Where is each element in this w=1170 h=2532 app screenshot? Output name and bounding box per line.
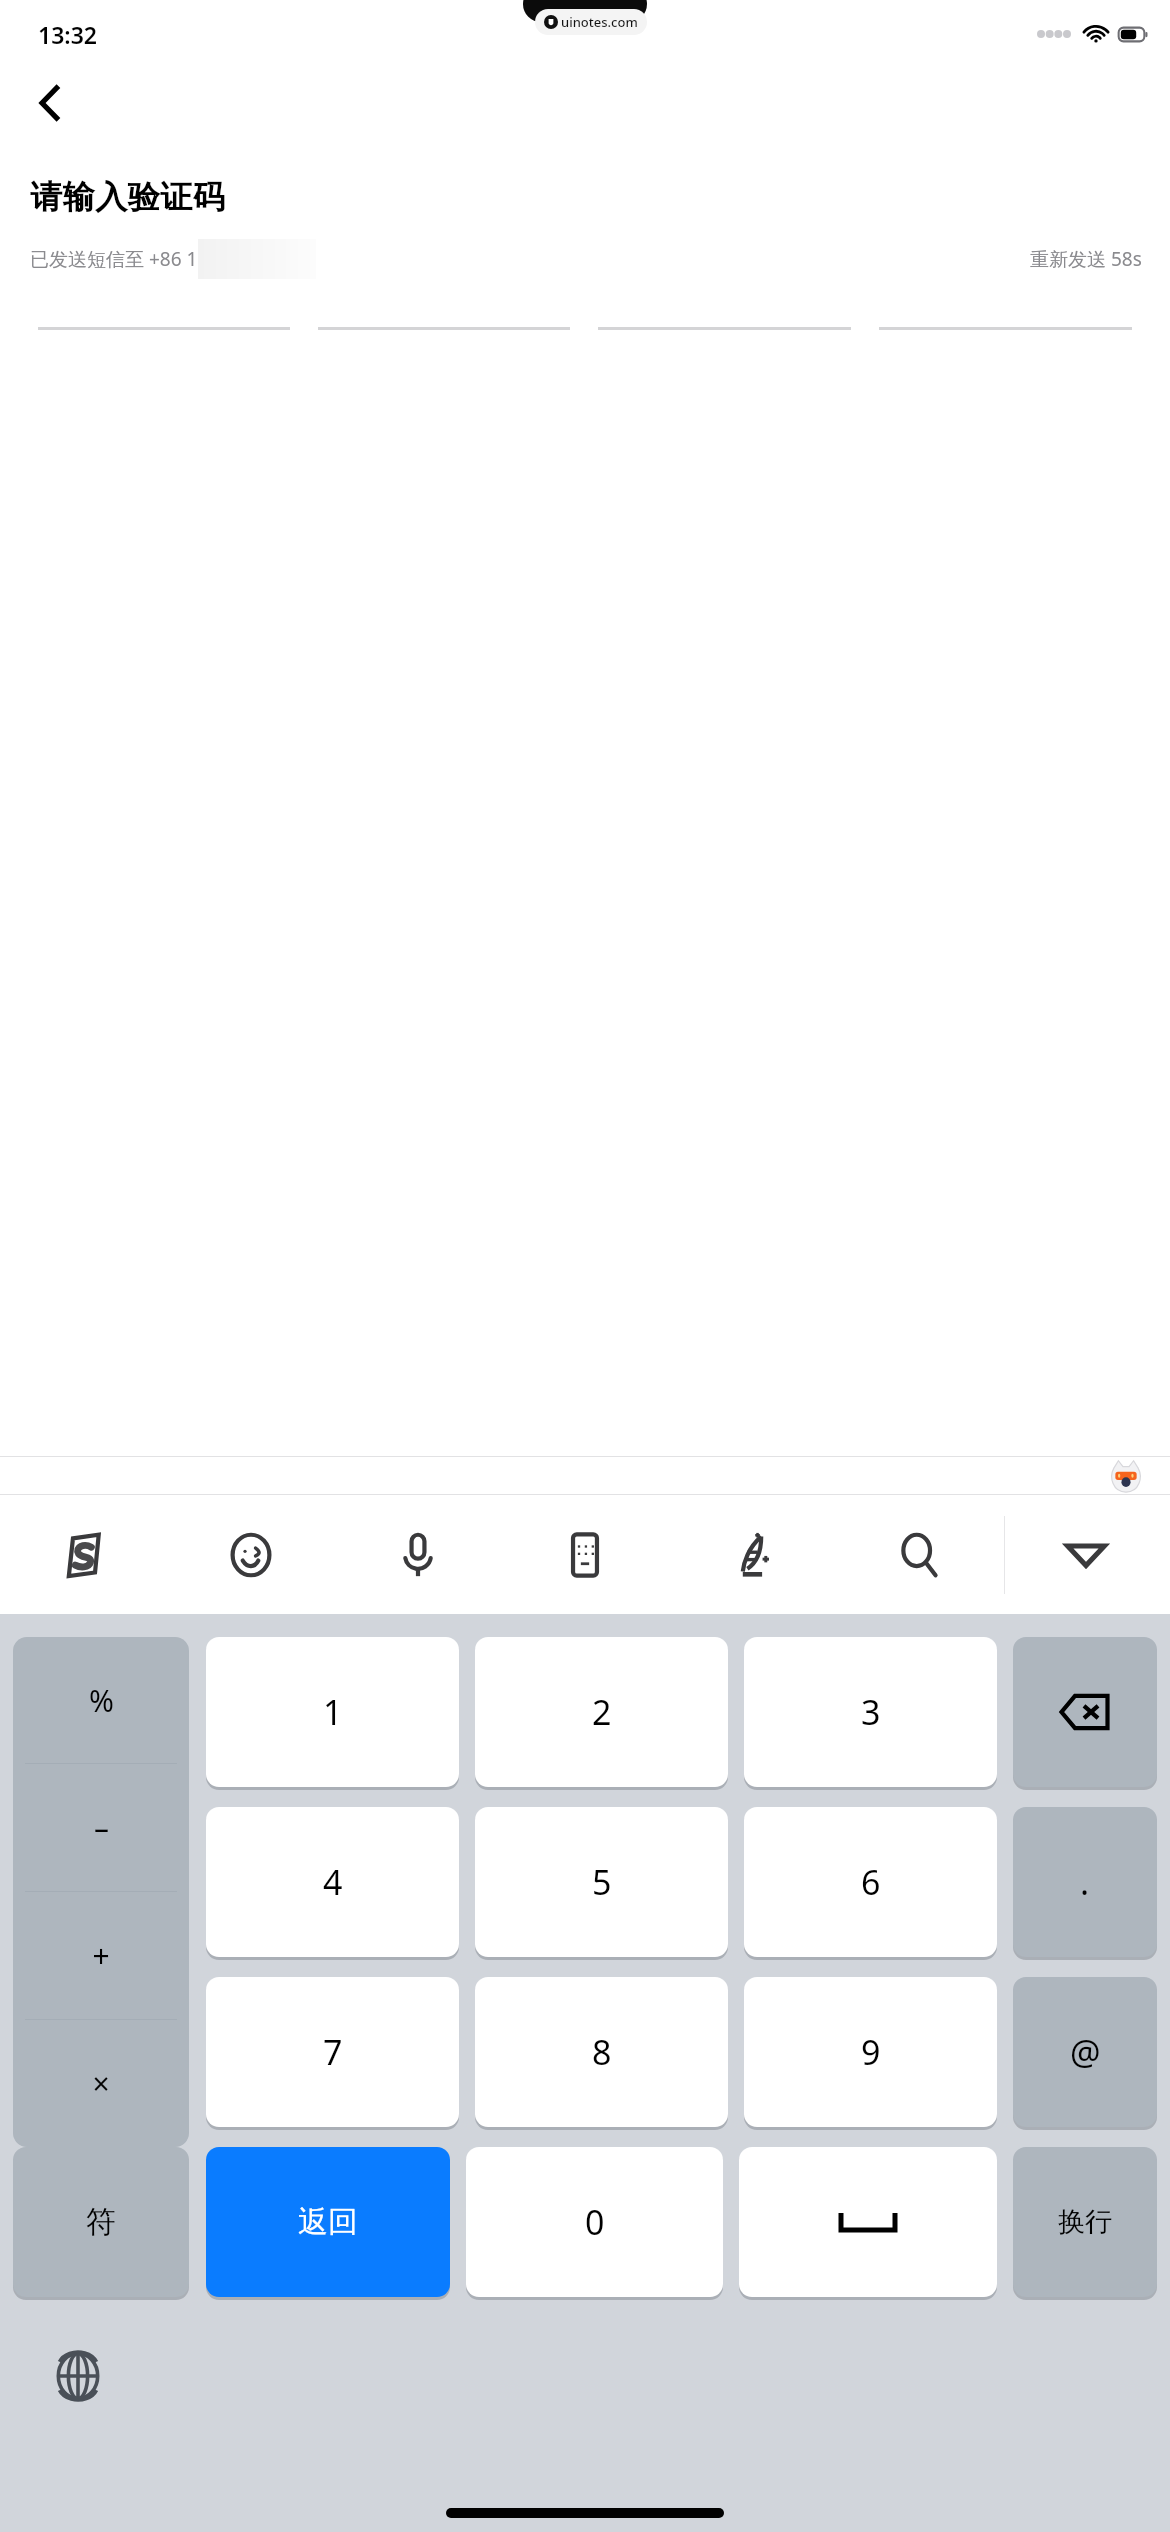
staticText: + <box>92 1935 110 1976</box>
staticText: 已发送短信至 +86 1 <box>30 246 198 272</box>
staticText: 7 <box>323 2029 343 2075</box>
button[interactable]: Switch language <box>50 2348 106 2404</box>
staticText: × <box>92 2063 110 2104</box>
button[interactable]: 重新发送 58s <box>1030 246 1142 272</box>
staticText: 3 <box>861 1689 881 1735</box>
button[interactable]: Backspace <box>1013 1637 1157 1787</box>
button[interactable]: 9 <box>744 1977 997 2127</box>
button[interactable]: Emoji <box>167 1495 334 1614</box>
button[interactable]: Sticker <box>1104 1457 1148 1494</box>
button[interactable]: Handwriting <box>668 1495 835 1614</box>
button[interactable]: Hide keyboard <box>1002 1495 1170 1614</box>
staticText: 4 <box>323 1859 343 1905</box>
staticText: 0 <box>585 2199 605 2245</box>
button[interactable]: Period <box>1013 1807 1157 1957</box>
staticText: 换行 <box>1058 2205 1112 2239</box>
button[interactable]: 1 <box>206 1637 459 1787</box>
staticText: 2 <box>592 1689 612 1735</box>
button[interactable]: 4 <box>206 1807 459 1957</box>
button[interactable]: Space <box>739 2147 997 2297</box>
staticText: 重新发送 58s <box>1030 246 1142 272</box>
button[interactable]: 6 <box>744 1807 997 1957</box>
button[interactable]: Search <box>835 1495 1002 1614</box>
staticText: 9 <box>861 2029 881 2075</box>
staticText: 请输入验证码 <box>30 177 225 217</box>
staticText: 1 <box>323 1689 343 1735</box>
staticText: – <box>94 1807 109 1848</box>
button[interactable]: 5 <box>475 1807 728 1957</box>
button[interactable]: 8 <box>475 1977 728 2127</box>
button[interactable]: At sign <box>1013 1977 1157 2127</box>
staticText: 6 <box>861 1859 881 1905</box>
staticText: 返回 <box>298 2203 358 2241</box>
button[interactable]: 2 <box>475 1637 728 1787</box>
button[interactable]: 返回 <box>206 2147 450 2297</box>
button[interactable]: 符 <box>13 2147 189 2297</box>
button[interactable]: 0 <box>466 2147 723 2297</box>
staticText: uinotes.com <box>561 13 638 31</box>
staticText: 5 <box>592 1859 612 1905</box>
button[interactable]: 7 <box>206 1977 459 2127</box>
button[interactable]: 3 <box>744 1637 997 1787</box>
staticText: 符 <box>86 2203 116 2241</box>
staticText: % <box>89 1680 114 1721</box>
button[interactable]: Sogou <box>0 1495 167 1614</box>
button[interactable]: Back <box>20 74 78 132</box>
button[interactable]: Keyboard layout <box>501 1495 668 1614</box>
button[interactable]: 换行 <box>1013 2147 1157 2297</box>
staticText: @ <box>1070 2029 1101 2075</box>
staticText: . <box>1080 1859 1090 1905</box>
button[interactable]: % <box>13 1637 189 2147</box>
staticText: 13:32 <box>38 19 97 50</box>
button[interactable]: Voice <box>334 1495 501 1614</box>
staticText: 8 <box>592 2029 612 2075</box>
